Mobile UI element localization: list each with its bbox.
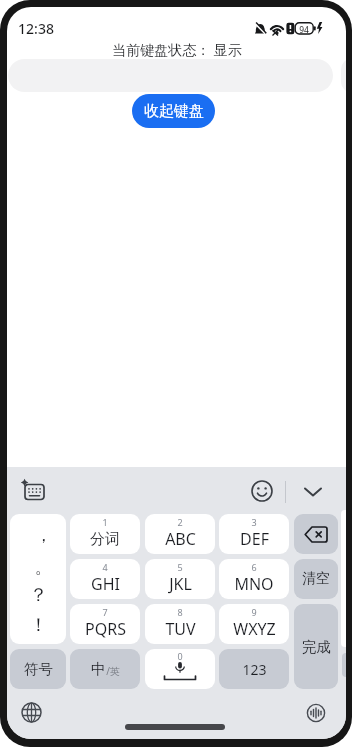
staticText: MNO: [234, 573, 274, 595]
staticText: 3: [251, 516, 257, 528]
button[interactable]: [307, 704, 325, 722]
button[interactable]: 清空: [294, 559, 338, 599]
staticText: 收起键盘: [144, 102, 204, 121]
staticText: 6: [251, 561, 257, 573]
staticText: DEF: [240, 528, 269, 550]
staticText: 9: [251, 606, 257, 618]
staticText: 中: [91, 660, 106, 679]
staticText: 0: [177, 650, 183, 662]
button[interactable]: 6: [219, 559, 289, 599]
staticText: TUV: [165, 618, 196, 640]
staticText: 符号: [24, 660, 53, 678]
staticText: ！: [29, 613, 48, 636]
staticText: 94: [295, 24, 313, 34]
staticText: 7: [102, 606, 108, 618]
button[interactable]: 收起键盘: [132, 94, 215, 128]
staticText: 123: [242, 660, 267, 679]
staticText: 5: [177, 561, 183, 573]
button[interactable]: 5: [145, 559, 215, 599]
staticText: 4: [102, 561, 108, 573]
staticText: 12:38: [18, 19, 54, 38]
staticText: 分词: [90, 530, 120, 549]
button[interactable]: 0: [145, 649, 215, 689]
staticText: GHI: [91, 573, 120, 595]
button[interactable]: [303, 486, 323, 498]
staticText: 完成: [302, 638, 331, 656]
button[interactable]: 4: [70, 559, 140, 599]
staticText: ？: [29, 583, 48, 606]
button[interactable]: [21, 702, 42, 723]
button[interactable]: 1: [70, 514, 140, 554]
button[interactable]: 8: [145, 604, 215, 644]
button[interactable]: 符号: [10, 649, 66, 689]
button[interactable]: ，: [10, 514, 66, 644]
button[interactable]: 7: [70, 604, 140, 644]
staticText: /英: [106, 664, 120, 678]
button[interactable]: 9: [219, 604, 289, 644]
button[interactable]: [294, 514, 338, 554]
button[interactable]: 中: [70, 649, 140, 689]
staticText: PQRS: [85, 618, 126, 640]
button[interactable]: 完成: [294, 604, 338, 689]
button[interactable]: 123: [219, 649, 289, 689]
button[interactable]: [251, 480, 273, 502]
staticText: 当前键盘状态： 显示: [112, 40, 242, 59]
staticText: 1: [102, 516, 108, 528]
staticText: ABC: [165, 528, 196, 550]
staticText: 。: [35, 557, 52, 578]
staticText: 清空: [302, 570, 330, 588]
staticText: 8: [177, 606, 183, 618]
button[interactable]: 2: [145, 514, 215, 554]
staticText: JKL: [169, 573, 192, 595]
staticText: ，: [35, 525, 52, 546]
staticText: 2: [177, 516, 183, 528]
button[interactable]: [21, 479, 45, 501]
button[interactable]: 3: [219, 514, 289, 554]
staticText: WXYZ: [233, 618, 276, 640]
